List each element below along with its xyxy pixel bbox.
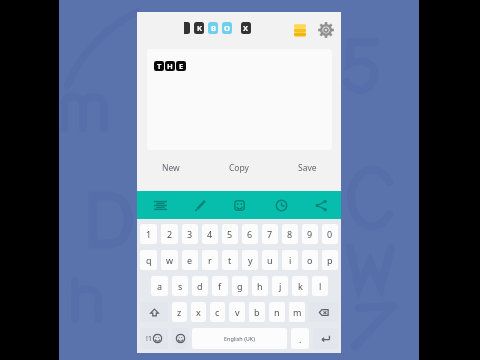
staticText: d [197,280,203,292]
staticText: New [162,162,180,174]
button[interactable]: d [192,276,208,296]
staticText: e [187,254,193,266]
button[interactable]: g [232,276,248,296]
staticText: y [248,254,253,266]
staticText: m [293,306,302,318]
button[interactable]: 0 [322,224,338,244]
staticText: n [274,306,280,318]
button[interactable]: . [291,328,309,349]
button[interactable]: f [212,276,228,296]
button[interactable]: 1 [140,224,157,244]
button[interactable]: w [161,250,178,270]
staticText: 6 [247,228,253,240]
button[interactable]: Settings [315,19,337,41]
button[interactable]: Sticker [225,191,253,219]
button[interactable]: a [151,276,168,296]
staticText: v [235,306,240,318]
staticText: 9 [307,228,313,240]
button[interactable] [140,302,168,322]
staticText: T [157,61,162,71]
button[interactable]: Share [307,191,335,219]
button[interactable] [309,302,338,322]
staticText: . [299,333,302,345]
button[interactable]: 5 [222,224,238,244]
button[interactable]: New [137,150,205,186]
button[interactable]: T [147,49,332,150]
staticText: k [298,280,303,292]
button[interactable]: b [249,302,265,322]
button[interactable] [172,328,188,349]
button[interactable]: c [210,302,225,322]
button[interactable]: h [252,276,268,296]
button[interactable]: Save [273,150,341,186]
button[interactable]: i [282,250,298,270]
button[interactable]: z [172,302,187,322]
staticText: B [211,23,216,33]
staticText: o [307,254,313,266]
button[interactable]: p [322,250,338,270]
button[interactable]: n [269,302,285,322]
button[interactable]: 9 [302,224,318,244]
staticText: 3 [187,228,193,240]
staticText: g [237,280,243,292]
button[interactable]: Copy [205,150,273,186]
staticText: 7 [267,228,273,240]
button[interactable]: j [272,276,288,296]
staticText: b [254,306,260,318]
button[interactable]: x [191,302,206,322]
staticText: H [167,61,173,71]
staticText: 5 [227,228,233,240]
button[interactable]: o [302,250,318,270]
staticText: r [208,254,212,266]
button[interactable]: l [312,276,328,296]
button[interactable]: English (UK) [192,328,287,349]
staticText: 8 [287,228,293,240]
button[interactable]: 6 [242,224,258,244]
button[interactable]: 8 [282,224,298,244]
staticText: 2 [167,228,173,240]
staticText: z [177,306,182,318]
button[interactable]: 2 [161,224,178,244]
staticText: x [196,306,201,318]
staticText: K [197,23,202,33]
staticText: j [279,280,282,292]
staticText: Copy [229,162,249,174]
button[interactable]: Text format [146,191,174,219]
staticText: c [215,306,220,318]
staticText: X [243,23,249,33]
button[interactable]: k [292,276,308,296]
button[interactable]: v [229,302,245,322]
button[interactable]: q [140,250,157,270]
staticText: p [327,254,333,266]
staticText: !1 [146,334,152,344]
staticText: 0 [327,228,333,240]
staticText: i [289,254,292,266]
button[interactable]: 4 [202,224,218,244]
button[interactable]: Coins [289,19,311,41]
button[interactable]: e [182,250,198,270]
button[interactable]: History [267,191,295,219]
staticText: O [224,23,230,33]
button[interactable]: 3 [182,224,198,244]
staticText: 4 [207,228,213,240]
staticText: a [157,280,163,292]
staticText: u [267,254,273,266]
button[interactable]: t [222,250,238,270]
staticText: h [257,280,263,292]
button[interactable]: KBOX [184,22,251,34]
button[interactable]: y [242,250,258,270]
button[interactable]: m [289,302,305,322]
staticText: w [166,254,174,266]
staticText: English (UK) [224,335,255,342]
staticText: s [178,280,183,292]
button[interactable]: u [262,250,278,270]
staticText: Save [298,162,317,174]
button[interactable]: 7 [262,224,278,244]
button[interactable]: !1 [140,328,168,349]
button[interactable]: Edit [186,191,214,219]
button[interactable]: r [202,250,218,270]
button[interactable]: s [172,276,188,296]
button[interactable] [313,328,338,349]
staticText: q [146,254,152,266]
staticText: l [319,280,322,292]
